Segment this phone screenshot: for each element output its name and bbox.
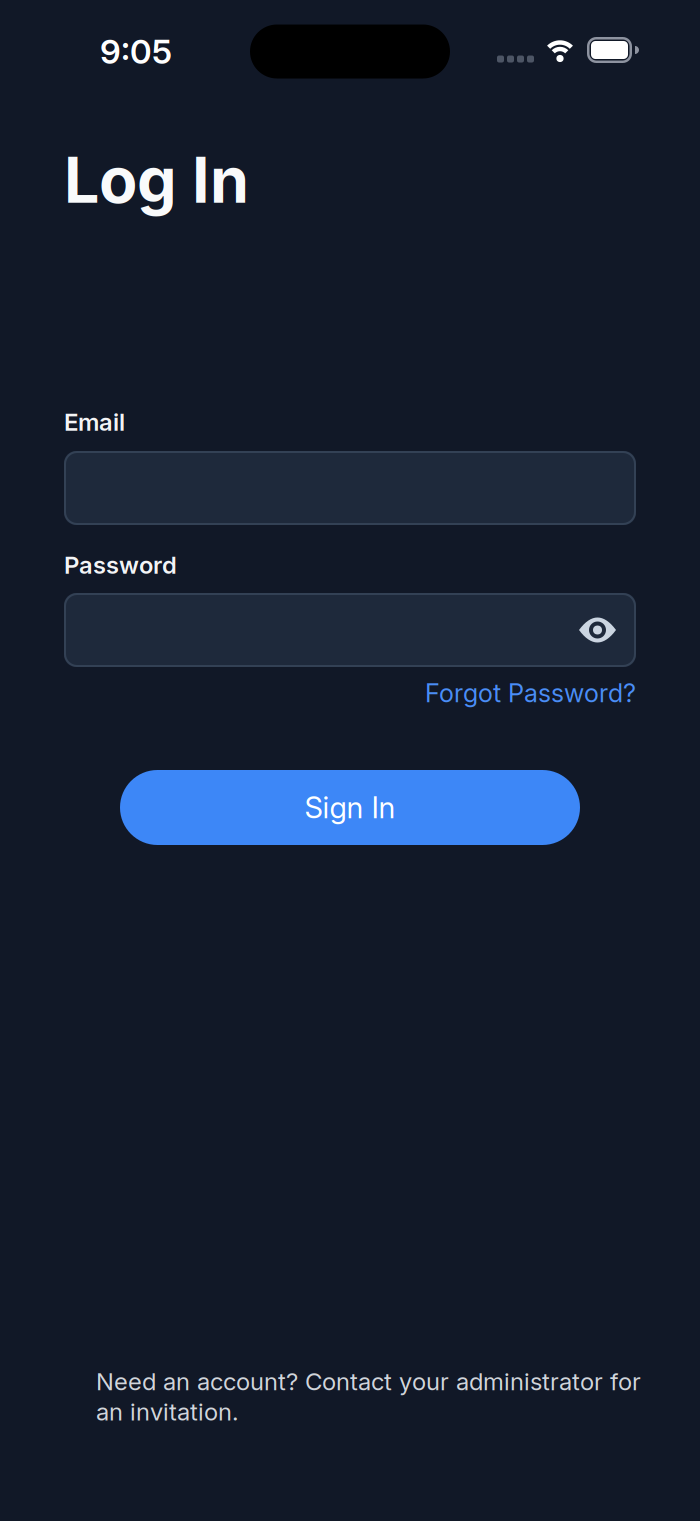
staticText: Email xyxy=(64,408,125,436)
staticText: 9:05 xyxy=(100,32,172,71)
button[interactable] xyxy=(64,593,636,667)
button[interactable] xyxy=(579,617,616,643)
staticText: Sign In xyxy=(304,790,395,825)
staticText: Forgot Password? xyxy=(425,678,636,708)
button[interactable] xyxy=(64,451,636,525)
staticText: an invitation. xyxy=(96,1398,239,1426)
staticText: Log In xyxy=(64,143,249,217)
staticText: Password xyxy=(64,551,177,579)
staticText: Need an account? Contact your administra… xyxy=(96,1367,641,1396)
button[interactable]: Forgot Password? xyxy=(425,678,636,708)
button[interactable]: Sign In xyxy=(120,770,580,845)
